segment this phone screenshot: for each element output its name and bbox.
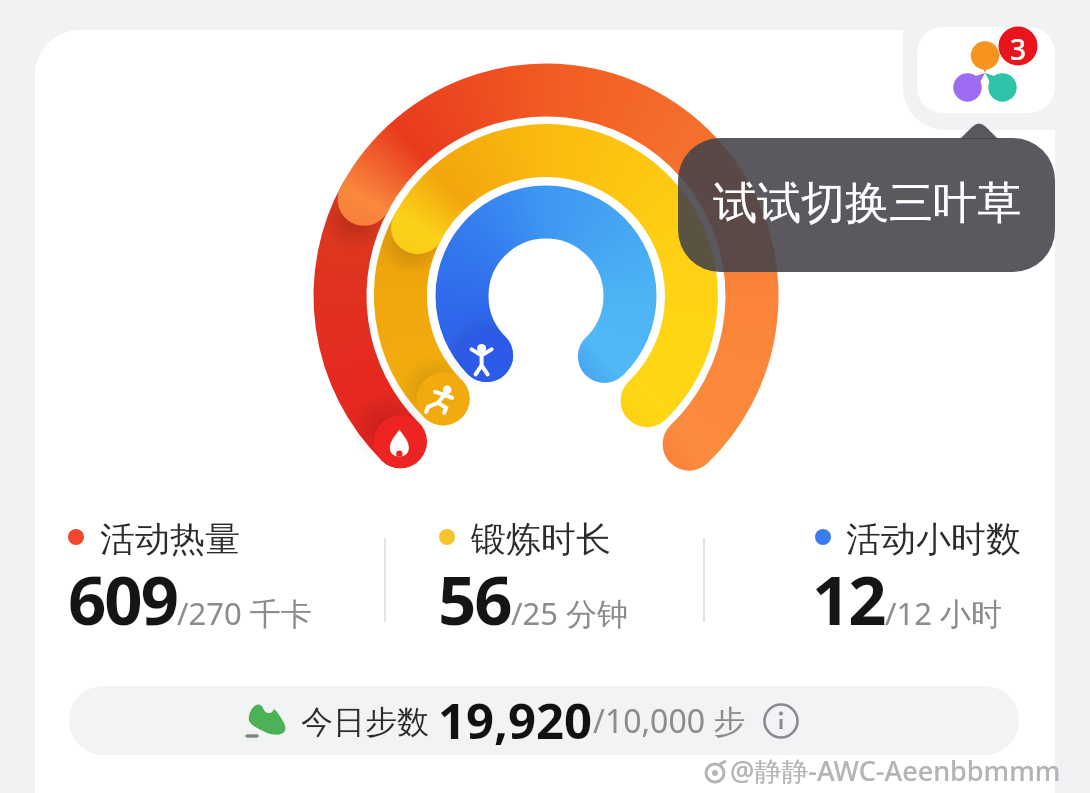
staticText: 19,920	[438, 687, 593, 754]
staticText: 活动热量	[100, 517, 240, 561]
staticText: /12 小时	[885, 592, 1003, 634]
staticText: 活动小时数	[846, 517, 1021, 561]
staticText: 锻炼时长	[471, 517, 611, 561]
staticText: 609	[68, 553, 177, 644]
staticText: /10,000 步	[593, 699, 762, 743]
staticText: /25 分钟	[511, 592, 629, 634]
staticText: 今日步数	[301, 699, 438, 743]
staticText: 3	[1002, 30, 1034, 68]
staticText: 12	[812, 553, 885, 644]
staticText: @静静-AWC-Aeenbbmmm	[730, 752, 1061, 789]
button[interactable]	[917, 27, 1055, 113]
staticText: /270 千卡	[177, 592, 312, 634]
staticText: 56	[438, 553, 511, 644]
button[interactable]: 今日步数	[69, 686, 1019, 755]
staticText: 试试切换三叶草	[713, 176, 1021, 231]
button[interactable]: 试试切换三叶草	[678, 118, 1055, 272]
